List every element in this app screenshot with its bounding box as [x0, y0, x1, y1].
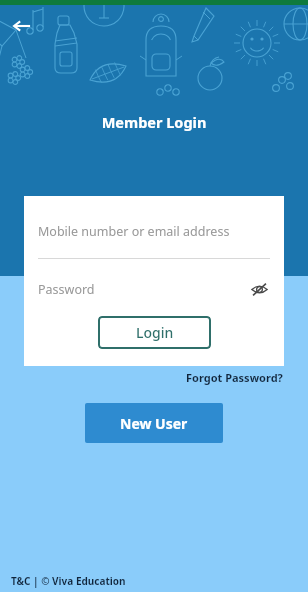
- staticText: New User: [120, 414, 188, 433]
- button[interactable]: Mobile number or email address: [24, 196, 284, 258]
- staticText: Member Login: [0, 112, 308, 132]
- staticText: T&C | © Viva Education: [11, 574, 126, 588]
- staticText: Login: [136, 323, 174, 342]
- button[interactable]: Back: [8, 12, 36, 40]
- button[interactable]: Forgot Password?: [184, 368, 285, 387]
- button[interactable]: New User: [85, 403, 223, 443]
- staticText: Mobile number or email address: [38, 223, 230, 240]
- button[interactable]: T&C | © Viva Education: [11, 574, 126, 588]
- staticText: Forgot Password?: [186, 370, 283, 385]
- button[interactable]: Login: [98, 316, 211, 349]
- button[interactable]: Show password: [248, 278, 270, 300]
- staticText: Password: [38, 281, 95, 298]
- button[interactable]: Password: [24, 259, 284, 315]
